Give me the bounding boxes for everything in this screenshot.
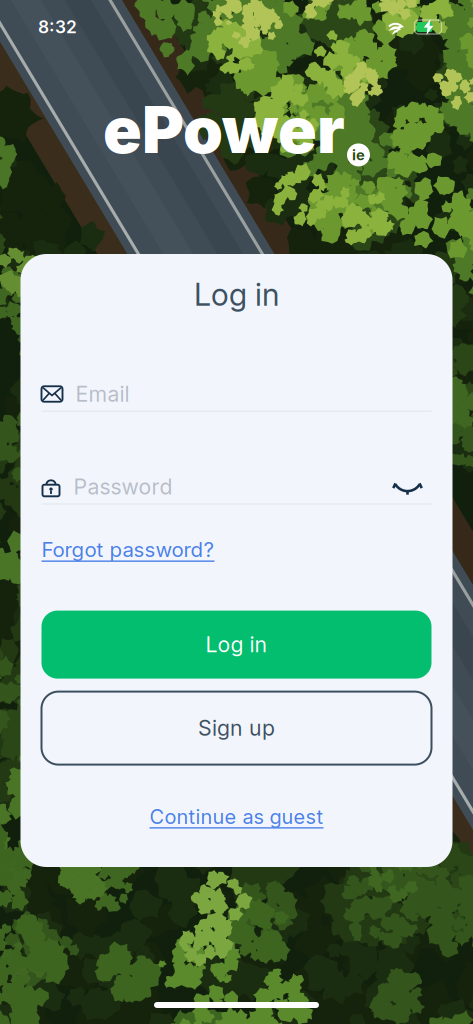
button[interactable]: Show password	[383, 475, 431, 499]
staticText: Password	[73, 474, 172, 500]
button[interactable]: Sign up	[41, 692, 431, 765]
staticText: 8:32	[38, 16, 77, 37]
button[interactable]: Forgot password?	[41, 539, 214, 561]
staticText: Log in	[205, 632, 267, 657]
staticText: ie	[352, 146, 365, 164]
staticText: ePower	[103, 91, 345, 168]
staticText: Sign up	[198, 715, 275, 741]
staticText: Continue as guest	[149, 804, 323, 829]
staticText: Log in	[194, 276, 279, 313]
button[interactable]: Log in	[41, 611, 431, 679]
staticText: Forgot password?	[41, 537, 214, 562]
button[interactable]: Continue as guest	[149, 806, 323, 828]
staticText: Email	[75, 381, 129, 407]
